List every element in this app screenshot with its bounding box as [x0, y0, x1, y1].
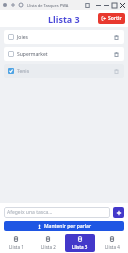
staticText: Llista 3	[48, 13, 80, 25]
staticText: Sortir	[108, 15, 122, 22]
staticText: Llista 1	[9, 244, 24, 250]
button[interactable]: Llista 4	[97, 234, 127, 252]
button[interactable]: Sortir	[98, 13, 125, 24]
staticText: Llista de Tasques PWA	[27, 3, 69, 8]
button[interactable]: Maximize	[110, 1, 118, 9]
staticText: Afegeix una tasca...	[7, 209, 53, 216]
button[interactable]: Llista 1	[1, 234, 31, 252]
button[interactable]: Check Supermarket	[4, 47, 124, 61]
button[interactable]: Restore	[102, 1, 110, 9]
button[interactable]: Llista 2	[33, 234, 63, 252]
staticText: Tenis	[17, 68, 112, 75]
button[interactable]: Check Supermarket	[8, 51, 14, 57]
button[interactable]: Delete Joies	[112, 33, 120, 41]
staticText: Llista 2	[41, 244, 56, 250]
staticText: Mantenir per parlar	[44, 223, 92, 230]
button[interactable]: Check Joies	[4, 30, 124, 44]
staticText: Llista 3	[72, 244, 88, 250]
button[interactable]: Minimize	[94, 1, 102, 9]
button[interactable]: Llista 3	[65, 234, 95, 252]
button[interactable]: Install app	[84, 2, 91, 9]
button[interactable]: App icon	[2, 2, 8, 8]
button[interactable]: Reload	[18, 2, 24, 8]
button[interactable]: Close	[118, 1, 126, 9]
staticText: Llista 4	[105, 244, 120, 250]
button[interactable]: Delete Tenis	[112, 67, 120, 75]
button[interactable]: Add task	[113, 207, 124, 218]
button[interactable]: New tab	[10, 2, 16, 8]
button[interactable]: Uncheck Tenis	[4, 64, 124, 78]
staticText: Supermarket	[17, 51, 112, 58]
button[interactable]: Delete Supermarket	[112, 50, 120, 58]
button[interactable]: Check Joies	[8, 34, 14, 40]
button[interactable]: Uncheck Tenis	[8, 68, 14, 74]
button[interactable]: Mantenir per parlar	[4, 221, 124, 231]
button[interactable]: Afegeix una tasca...	[4, 207, 110, 218]
staticText: Joies	[17, 34, 112, 41]
